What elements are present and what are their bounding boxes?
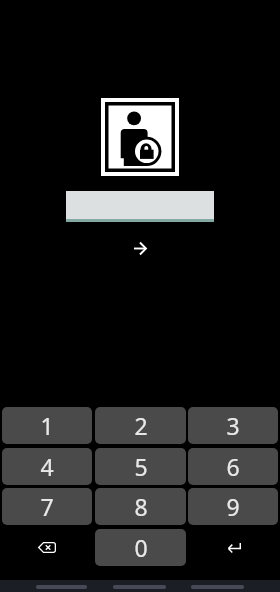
button[interactable]: 2 xyxy=(95,407,186,444)
staticText: 3 xyxy=(226,410,240,441)
button[interactable]: 3 xyxy=(188,407,278,444)
button[interactable]: Enter xyxy=(188,529,278,566)
staticText: 2 xyxy=(134,410,148,441)
button[interactable]: Backspace xyxy=(2,529,92,566)
button[interactable]: 0 xyxy=(95,529,186,566)
button[interactable]: 4 xyxy=(2,448,92,485)
button[interactable]: 8 xyxy=(95,488,186,525)
button[interactable]: 1 xyxy=(2,407,92,444)
button[interactable]: Home xyxy=(113,585,166,589)
staticText: 7 xyxy=(40,491,54,522)
button[interactable]: Back xyxy=(36,585,87,589)
staticText: 4 xyxy=(40,451,54,482)
button[interactable]: Recents xyxy=(191,585,244,589)
button[interactable]: 5 xyxy=(95,448,186,485)
button[interactable]: 6 xyxy=(188,448,278,485)
staticText: 8 xyxy=(134,491,148,522)
button[interactable]: 7 xyxy=(2,488,92,525)
staticText: 5 xyxy=(134,451,148,482)
staticText: 1 xyxy=(40,410,54,441)
staticText: 9 xyxy=(226,491,240,522)
button[interactable] xyxy=(66,191,214,221)
button[interactable]: 9 xyxy=(188,488,278,525)
staticText: 6 xyxy=(226,451,240,482)
staticText: 0 xyxy=(134,532,148,563)
button[interactable]: Submit xyxy=(120,228,160,268)
